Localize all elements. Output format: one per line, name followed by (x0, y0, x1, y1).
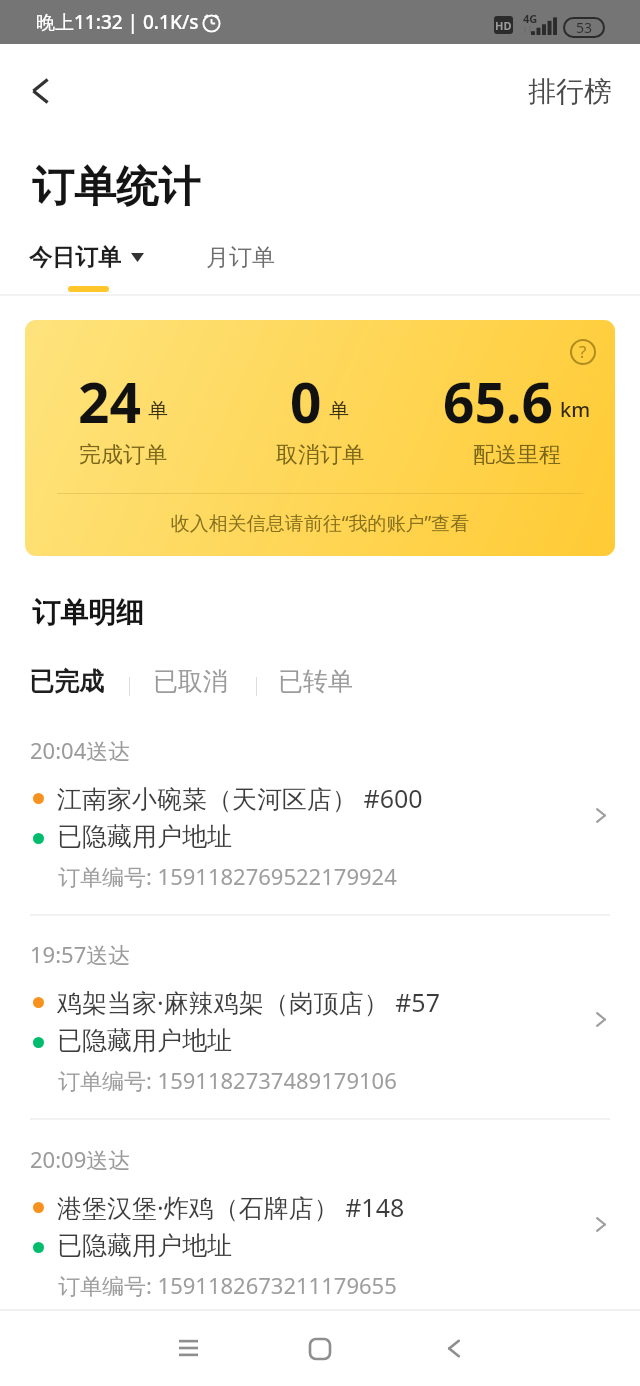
staticText: 单 (329, 398, 349, 423)
staticText: 已隐藏用户地址 (57, 1230, 232, 1261)
button[interactable]: Home (280, 1309, 360, 1386)
staticText: 配送里程 (473, 441, 561, 469)
staticText: 已隐藏用户地址 (57, 821, 232, 852)
staticText: km (560, 396, 591, 423)
staticText: 订单统计 (32, 161, 200, 214)
staticText: 取消订单 (276, 441, 364, 469)
staticText: 晚上11:32 | 0.1K/s (36, 9, 199, 35)
button[interactable]: 今日订单 (17, 231, 156, 284)
button[interactable]: 月订单 (194, 231, 287, 284)
staticText: 订单明细 (32, 595, 144, 630)
staticText: 订单编号: 1591182769522179924 (58, 861, 397, 891)
button[interactable]: Help (553, 322, 612, 381)
staticText: 24 (78, 364, 141, 439)
button[interactable]: Back (414, 1308, 494, 1386)
staticText: 0 (290, 364, 322, 439)
staticText: 收入相关信息请前往“我的账户”查看 (25, 510, 615, 536)
staticText: 今日订单 (29, 243, 121, 272)
staticText: 江南家小碗菜（天河区店） #600 (57, 781, 423, 815)
button[interactable]: Back (12, 63, 68, 119)
button[interactable]: 已完成 (25, 660, 108, 703)
staticText: 港堡汉堡·炸鸡（石牌店） #148 (57, 1190, 405, 1224)
button[interactable]: 20:04送达 (0, 730, 640, 914)
staticText: 鸡架当家·麻辣鸡架（岗顶店） #57 (57, 985, 440, 1019)
staticText: 完成订单 (79, 441, 167, 469)
button[interactable]: 19:57送达 (0, 934, 640, 1118)
staticText: 19:57送达 (30, 939, 131, 969)
button[interactable]: 排行榜 (516, 64, 624, 119)
staticText: 订单编号: 1591182737489179106 (58, 1065, 397, 1095)
staticText: 53 (576, 18, 593, 37)
button[interactable]: 已转单 (274, 660, 357, 703)
staticText: 月订单 (206, 243, 275, 272)
staticText: 排行榜 (528, 74, 612, 109)
staticText: 已转单 (278, 666, 353, 697)
staticText: 已隐藏用户地址 (57, 1025, 232, 1056)
staticText: 20:04送达 (30, 735, 131, 765)
staticText: 20:09送达 (30, 1144, 131, 1174)
staticText: 已取消 (153, 666, 228, 697)
staticText: 单 (148, 398, 168, 423)
staticText: HD (495, 18, 512, 33)
button[interactable]: 已取消 (149, 660, 232, 703)
staticText: 4G (523, 11, 538, 26)
staticText: 65.6 (443, 364, 553, 439)
staticText: 订单编号: 1591182673211179655 (58, 1270, 397, 1300)
button[interactable]: Recent apps (148, 1308, 228, 1386)
button[interactable]: 20:09送达 (0, 1139, 640, 1323)
staticText: 已完成 (29, 666, 104, 697)
staticText: ? (579, 340, 587, 363)
